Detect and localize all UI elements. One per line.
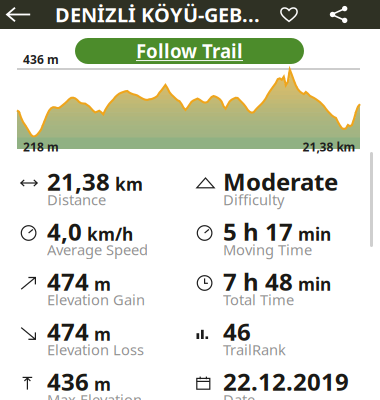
staticText: TrailRank <box>223 340 286 359</box>
staticText: 22.12.2019 <box>223 366 349 397</box>
staticText: 474 m <box>47 316 111 347</box>
button[interactable]: Follow Trail <box>75 38 304 64</box>
staticText: Elevation Loss <box>47 340 144 359</box>
staticText: Max Elevation <box>47 390 142 400</box>
staticText: Distance <box>47 190 106 209</box>
staticText: 5 h 17 min <box>223 216 331 247</box>
staticText: 436 m <box>23 51 59 67</box>
staticText: Date <box>223 390 255 400</box>
staticText: Difficulty <box>223 190 284 209</box>
staticText: Average Speed <box>47 240 148 259</box>
staticText: Moderate <box>223 166 338 197</box>
staticText: 21,38 km <box>302 139 355 155</box>
staticText: 436 m <box>47 366 111 397</box>
staticText: 46 <box>223 316 251 347</box>
staticText: Elevation Gain <box>47 290 145 309</box>
staticText: 474 m <box>47 266 111 297</box>
staticText: DENİZLİ KÖYÜ-GEB... <box>55 1 260 28</box>
button[interactable]: DENİZLİ KÖYÜ-GEB... <box>55 0 265 29</box>
staticText: 21,38 km <box>47 166 143 197</box>
staticText: 4,0 km/h <box>47 216 133 247</box>
staticText: 218 m <box>23 139 59 155</box>
staticText: 7 h 48 min <box>223 266 331 297</box>
button[interactable]: Back <box>0 0 37 29</box>
button[interactable]: Share <box>317 0 361 29</box>
button[interactable]: Favorite <box>267 0 311 29</box>
staticText: Total Time <box>223 290 294 309</box>
staticText: Follow Trail <box>136 39 243 63</box>
staticText: Moving Time <box>223 240 312 259</box>
